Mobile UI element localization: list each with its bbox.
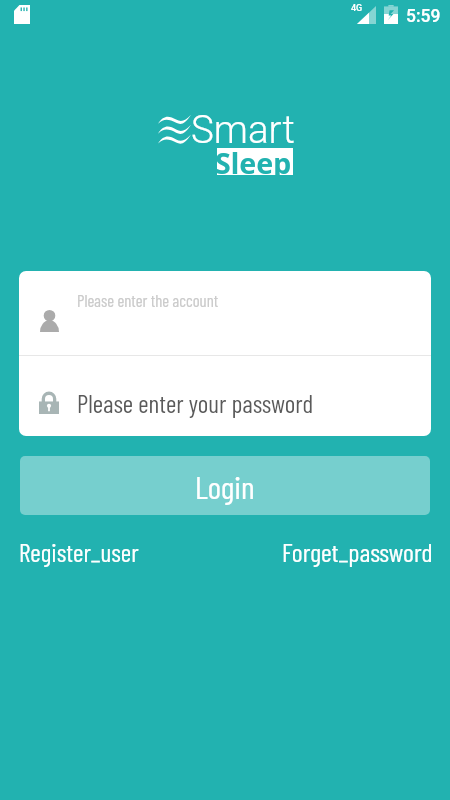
- staticText: Sleep: [217, 148, 292, 175]
- staticText: Please enter your password: [77, 388, 314, 418]
- staticText: Register_user: [19, 536, 139, 567]
- other: Battery: [384, 5, 398, 24]
- button[interactable]: Login: [20, 456, 430, 515]
- other: Mobile signal: [357, 6, 376, 24]
- button[interactable]: Password: [19, 356, 431, 436]
- button[interactable]: Register_user: [19, 536, 139, 567]
- staticText: Please enter the account: [77, 290, 219, 310]
- staticText: 4G: [351, 3, 363, 14]
- other: Account: [40, 310, 59, 332]
- other: Password: [39, 391, 59, 414]
- other: SD card: [14, 5, 30, 24]
- staticText: 5:59: [406, 6, 441, 27]
- staticText: Forget_password: [282, 536, 433, 567]
- button[interactable]: Forget_password: [282, 536, 433, 567]
- button[interactable]: Account: [19, 271, 431, 355]
- staticText: Smart: [191, 107, 295, 152]
- staticText: Login: [195, 467, 255, 505]
